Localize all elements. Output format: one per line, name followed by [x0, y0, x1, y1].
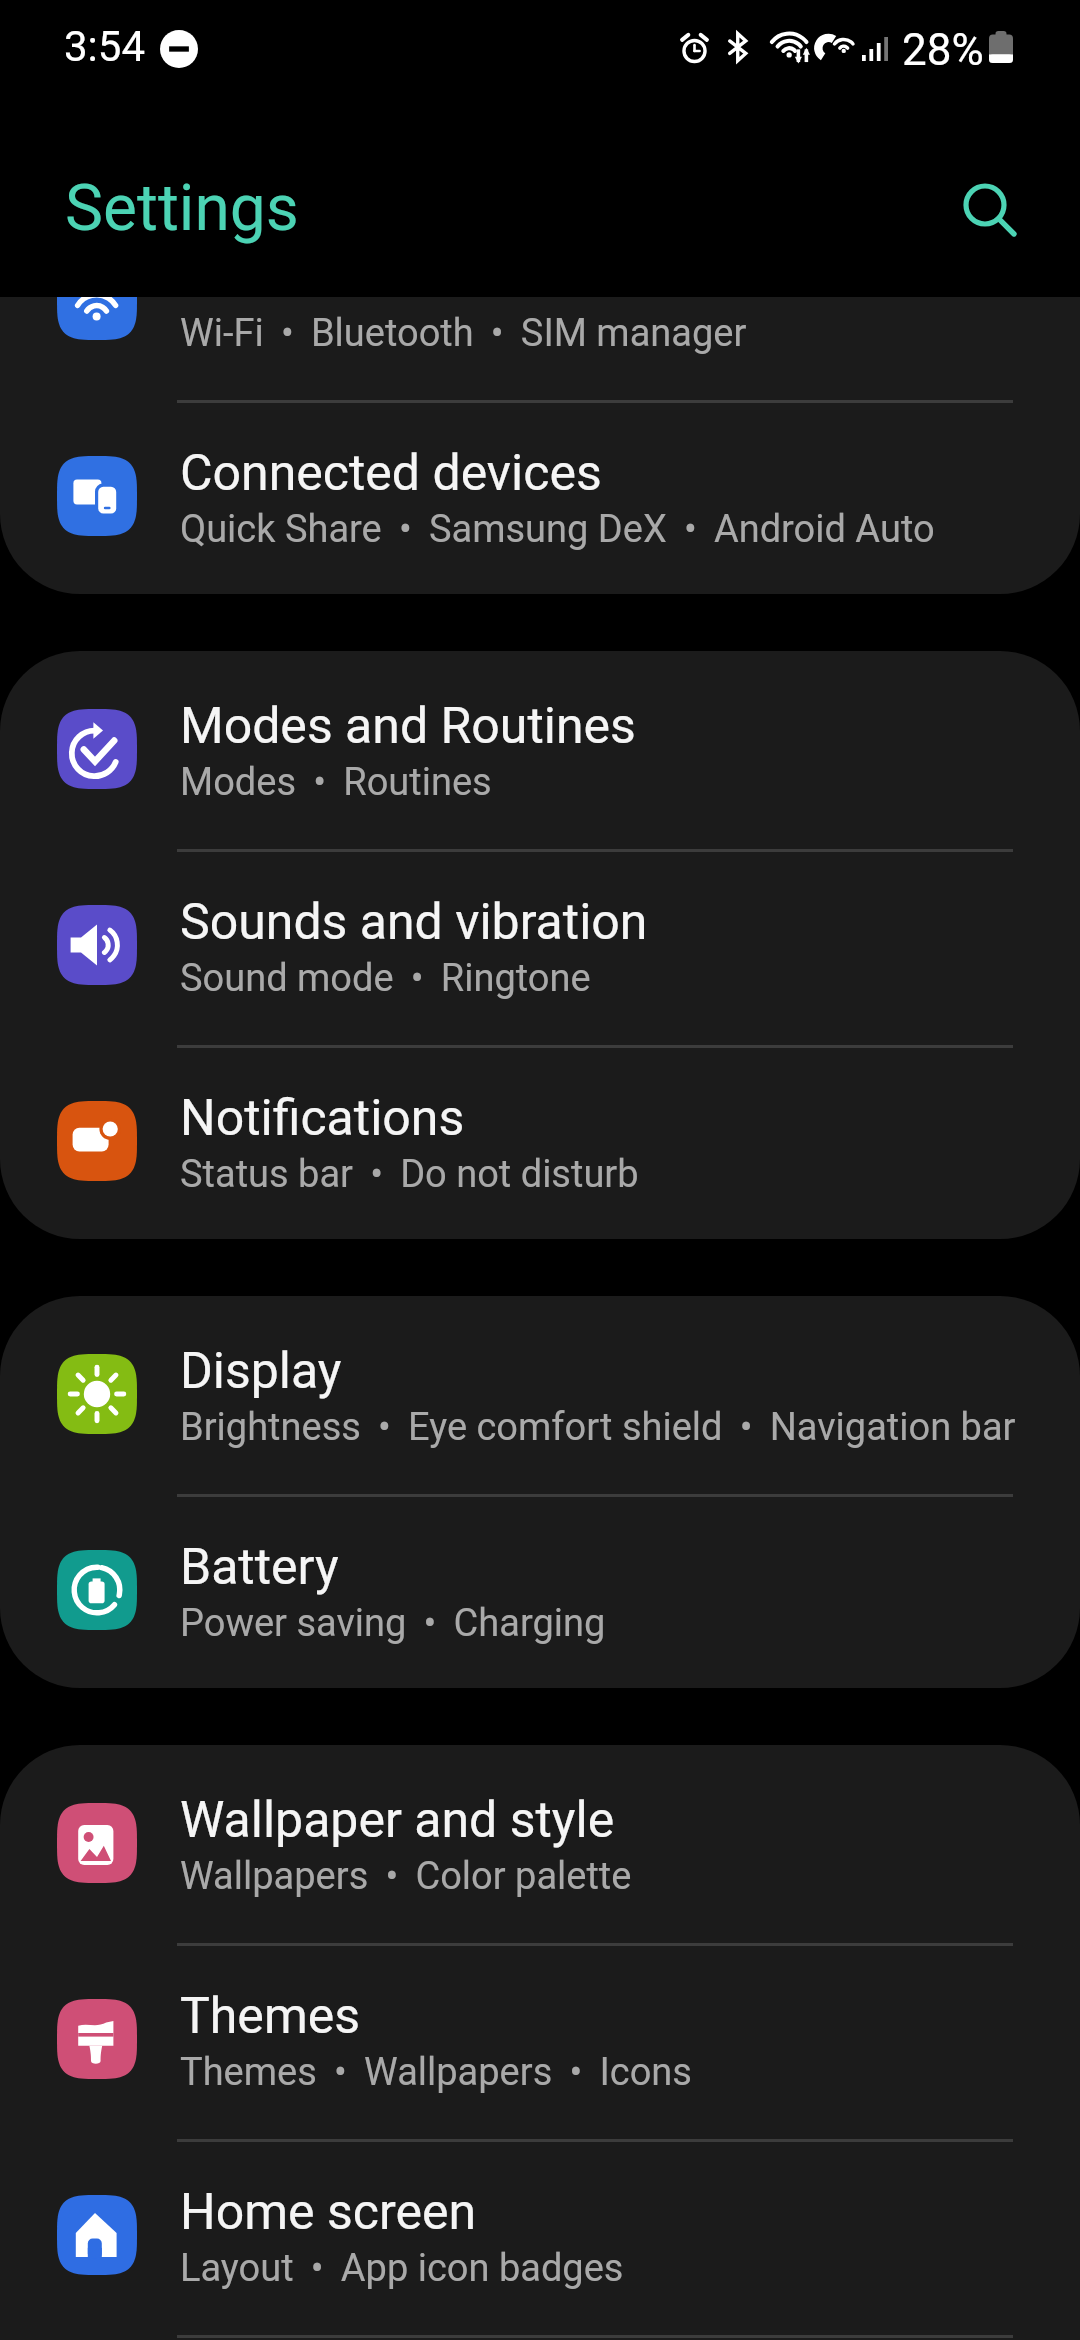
staticText: Battery: [180, 1538, 339, 1597]
button[interactable]: Connected devices: [0, 398, 1080, 594]
staticText: Themes • Wallpapers • Icons: [180, 2050, 692, 2095]
staticText: Home screen: [180, 2183, 477, 2242]
button[interactable]: Notifications: [0, 1043, 1080, 1239]
button[interactable]: Lock screen: [0, 2333, 1080, 2340]
staticText: Wallpaper and style: [180, 1791, 615, 1850]
staticText: Modes • Routines: [180, 760, 492, 805]
staticText: Sounds and vibration: [180, 893, 648, 952]
staticText: Wi-Fi • Bluetooth • SIM manager: [180, 311, 747, 356]
staticText: Notifications: [180, 1089, 465, 1148]
staticText: Wallpapers • Color palette: [180, 1854, 632, 1899]
button[interactable]: Sounds and vibration: [0, 847, 1080, 1043]
staticText: Layout • App icon badges: [180, 2246, 624, 2291]
staticText: Quick Share • Samsung DeX • Android Auto: [180, 507, 935, 552]
button[interactable]: Connections: [0, 297, 1080, 398]
staticText: Status bar • Do not disturb: [180, 1152, 639, 1197]
button[interactable]: Battery: [0, 1492, 1080, 1688]
button[interactable]: Search: [937, 161, 1033, 257]
button[interactable]: Wallpaper and style: [0, 1745, 1080, 1941]
button[interactable]: Home screen: [0, 2137, 1080, 2333]
staticText: Modes and Routines: [180, 697, 636, 756]
staticText: Themes: [180, 1987, 361, 2046]
staticText: Settings: [65, 171, 299, 246]
staticText: Connected devices: [180, 444, 602, 503]
staticText: Brightness • Eye comfort shield • Naviga…: [180, 1405, 1016, 1450]
button[interactable]: Themes: [0, 1941, 1080, 2137]
staticText: Power saving • Charging: [180, 1601, 606, 1646]
button[interactable]: Display: [0, 1296, 1080, 1492]
staticText: Sound mode • Ringtone: [180, 956, 591, 1001]
staticText: 3:54: [64, 22, 145, 71]
staticText: 28%: [902, 24, 984, 76]
staticText: Display: [180, 1342, 342, 1401]
button[interactable]: Modes and Routines: [0, 651, 1080, 847]
